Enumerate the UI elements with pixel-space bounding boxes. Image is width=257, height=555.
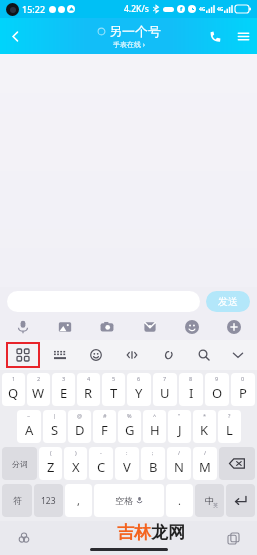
staticText: 0 xyxy=(241,375,245,382)
button[interactable]: ; xyxy=(141,447,165,480)
button[interactable]: - xyxy=(89,447,113,480)
staticText: W xyxy=(32,384,45,402)
staticText: ; xyxy=(152,449,154,456)
staticText: 4 xyxy=(87,375,91,382)
staticText: - xyxy=(100,449,102,456)
staticText: 中 xyxy=(205,495,214,506)
button[interactable]: 6 xyxy=(127,373,151,406)
button[interactable]: Camera xyxy=(91,317,123,337)
staticText: 15:22 xyxy=(22,3,46,15)
staticText: 123 xyxy=(41,495,56,507)
button[interactable]: Keyboard xyxy=(50,345,70,365)
staticText: C xyxy=(97,458,106,476)
staticText: ^ xyxy=(153,412,157,419)
staticText: 吉林 xyxy=(117,522,151,543)
button[interactable]: 另一个号 xyxy=(97,23,161,50)
button[interactable]: ^ xyxy=(143,410,166,443)
staticText: : xyxy=(126,449,128,456)
staticText: Q xyxy=(8,384,19,402)
button[interactable]: # xyxy=(93,410,116,443)
staticText: 9 xyxy=(215,375,219,382)
staticText: G xyxy=(125,421,135,439)
staticText: / xyxy=(204,449,207,456)
button[interactable]: Backspace xyxy=(219,447,255,480)
button[interactable]: Emoji xyxy=(176,317,208,337)
staticText: . xyxy=(178,493,181,508)
button[interactable]: Search xyxy=(194,345,214,365)
staticText: 3 xyxy=(62,375,66,382)
button[interactable]: Emoji xyxy=(86,345,106,365)
staticText: N xyxy=(174,458,184,476)
button[interactable]: 8 xyxy=(179,373,203,406)
button[interactable]: Assistant xyxy=(14,528,34,548)
staticText: J xyxy=(178,421,182,439)
staticText: S xyxy=(51,421,59,439)
button[interactable]: @ xyxy=(68,410,91,443)
button[interactable]: Voice xyxy=(7,317,39,337)
staticText: K xyxy=(200,421,209,439)
button[interactable]: 3 xyxy=(52,373,75,406)
staticText: / xyxy=(178,449,181,456)
staticText: % xyxy=(127,412,132,419)
staticText: M xyxy=(199,458,211,476)
button[interactable]: 中 xyxy=(195,484,224,517)
staticText: 2 xyxy=(37,375,41,382)
staticText: D xyxy=(75,421,85,439)
button[interactable]: Back xyxy=(0,18,30,54)
staticText: E xyxy=(60,384,68,402)
button[interactable]: 9 xyxy=(205,373,229,406)
button[interactable]: 2 xyxy=(27,373,50,406)
button[interactable]: 7 xyxy=(153,373,177,406)
button[interactable]: 0 xyxy=(231,373,255,406)
button[interactable]: ) xyxy=(64,447,87,480)
button[interactable]: Menu xyxy=(229,18,257,54)
button[interactable]: % xyxy=(118,410,141,443)
button[interactable]: 分词 xyxy=(2,447,37,480)
button[interactable]: 符 xyxy=(2,484,32,517)
staticText: 7 xyxy=(163,375,167,382)
button[interactable]: 发送 xyxy=(206,291,250,312)
button[interactable]: Hide keyboard xyxy=(227,344,249,366)
staticText: | xyxy=(53,412,57,419)
button[interactable]: / xyxy=(193,447,217,480)
staticText: 4G xyxy=(217,6,224,13)
button[interactable]: Gallery xyxy=(49,317,81,337)
button[interactable]: Enter xyxy=(226,484,255,517)
staticText: 符 xyxy=(13,495,22,506)
button[interactable]: . xyxy=(166,484,193,517)
staticText: 4G xyxy=(199,6,206,13)
button[interactable]: Red packet xyxy=(134,317,166,337)
staticText: ) xyxy=(75,449,77,456)
button[interactable]: 123 xyxy=(34,484,63,517)
button[interactable]: Recents xyxy=(223,528,243,548)
button[interactable]: Clipboard xyxy=(158,345,178,365)
button[interactable]: " xyxy=(168,410,191,443)
button[interactable]: ? xyxy=(218,410,241,443)
button[interactable]: 空格 xyxy=(94,484,164,517)
button[interactable]: / xyxy=(167,447,191,480)
staticText: 1 xyxy=(12,375,16,382)
staticText: 6 xyxy=(137,375,141,382)
staticText: F xyxy=(101,421,108,439)
button[interactable]: More xyxy=(218,317,250,337)
button[interactable]: * xyxy=(193,410,216,443)
staticText: I xyxy=(189,384,194,402)
button[interactable]: 5 xyxy=(102,373,125,406)
button[interactable]: , xyxy=(65,484,92,517)
button[interactable]: Call xyxy=(201,18,229,54)
button[interactable]: ~ xyxy=(17,410,41,443)
staticText: Z xyxy=(47,458,55,476)
button[interactable]: 4 xyxy=(77,373,100,406)
staticText: 另一个号 xyxy=(109,23,161,39)
button[interactable]: 1 xyxy=(2,373,25,406)
button[interactable]: ( xyxy=(39,447,62,480)
button[interactable]: : xyxy=(115,447,139,480)
staticText: 分词 xyxy=(12,459,28,469)
staticText: 5 xyxy=(112,375,116,382)
button[interactable]: | xyxy=(43,410,66,443)
button[interactable]: Keyboard layouts xyxy=(6,342,40,368)
staticText: ~ xyxy=(27,412,31,419)
staticText: T xyxy=(110,384,118,402)
button[interactable]: Cursor xyxy=(122,345,142,365)
